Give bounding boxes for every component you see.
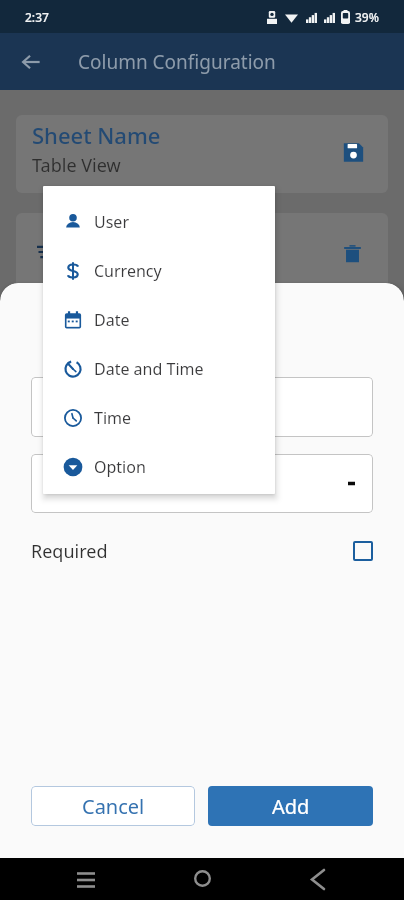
button[interactable]: Back bbox=[16, 47, 46, 77]
button[interactable]: Cancel bbox=[31, 786, 195, 826]
staticText: Required bbox=[31, 539, 108, 564]
staticText: Column Configuration bbox=[78, 49, 276, 75]
staticText: 39% bbox=[355, 9, 379, 25]
staticText: Currency bbox=[94, 260, 162, 282]
button[interactable]: Time bbox=[43, 393, 275, 442]
staticText: Sheet Name bbox=[32, 120, 161, 150]
button[interactable] bbox=[16, 213, 388, 291]
staticText: Add bbox=[272, 793, 310, 820]
button[interactable]: Add bbox=[208, 786, 373, 826]
button[interactable]: Required bbox=[31, 529, 373, 573]
button[interactable]: Option bbox=[43, 442, 275, 491]
button[interactable]: Home bbox=[184, 860, 220, 896]
staticText: 2:37 bbox=[25, 9, 49, 25]
button[interactable] bbox=[31, 377, 373, 437]
staticText: User bbox=[94, 211, 129, 233]
staticText: Date and Time bbox=[94, 358, 204, 380]
button[interactable] bbox=[31, 454, 373, 513]
button[interactable]: Recents bbox=[68, 861, 104, 897]
button[interactable]: Back bbox=[300, 861, 336, 897]
button[interactable]: Sheet Name bbox=[16, 115, 388, 193]
staticText: Table View bbox=[32, 153, 121, 178]
button[interactable]: Date bbox=[43, 295, 275, 344]
staticText: Time bbox=[94, 407, 132, 429]
staticText: Date bbox=[94, 309, 130, 331]
button[interactable]: Currency bbox=[43, 246, 275, 295]
button[interactable]: Date and Time bbox=[43, 344, 275, 393]
staticText: Option bbox=[94, 456, 146, 478]
staticText: Cancel bbox=[82, 793, 145, 820]
button[interactable]: User bbox=[43, 197, 275, 246]
